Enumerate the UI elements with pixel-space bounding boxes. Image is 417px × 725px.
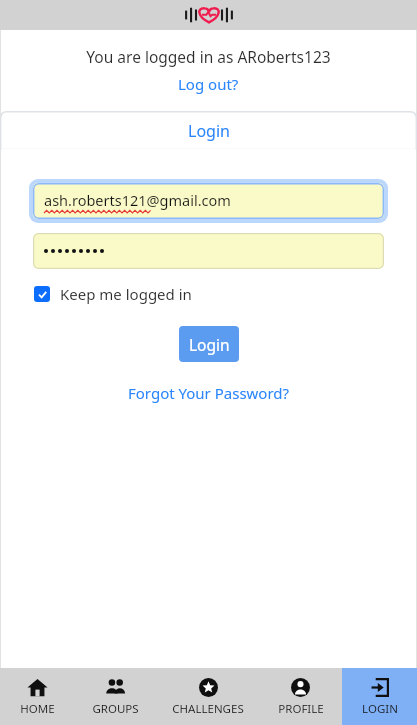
- staticText: Login: [189, 334, 230, 355]
- button[interactable]: CHALLENGES: [157, 668, 259, 725]
- staticText: Forgot Your Password?: [128, 383, 290, 403]
- staticText: Keep me logged in: [60, 284, 192, 304]
- staticText: CHALLENGES: [172, 701, 244, 717]
- button[interactable]: ash.roberts121@gmail.com: [33, 183, 384, 219]
- button[interactable]: Keep me logged in: [34, 282, 383, 306]
- button[interactable]: HOME: [0, 668, 74, 725]
- button[interactable]: Forgot Your Password?: [120, 381, 298, 405]
- button[interactable]: LOGIN: [342, 668, 417, 725]
- button[interactable]: Login: [179, 326, 239, 362]
- button[interactable]: [33, 233, 384, 269]
- button[interactable]: GROUPS: [74, 668, 157, 725]
- staticText: GROUPS: [92, 701, 139, 717]
- staticText: Log out?: [178, 74, 239, 94]
- staticText: HOME: [20, 701, 55, 717]
- other: App logo: [183, 4, 235, 26]
- staticText: ash.roberts121@gmail.com: [44, 190, 231, 210]
- button[interactable]: Log out?: [170, 72, 247, 96]
- staticText: You are logged in as ARoberts123: [0, 46, 417, 67]
- staticText: Login: [188, 120, 230, 142]
- button[interactable]: Login: [0, 111, 417, 150]
- staticText: LOGIN: [362, 701, 398, 717]
- staticText: PROFILE: [278, 701, 324, 717]
- button[interactable]: PROFILE: [259, 668, 342, 725]
